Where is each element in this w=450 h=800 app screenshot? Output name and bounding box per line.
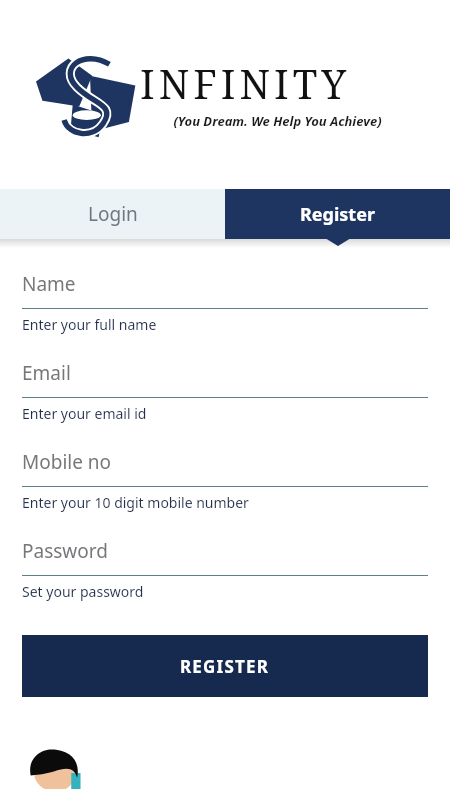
staticText: Enter your email id	[22, 404, 147, 423]
button[interactable]: Name	[0, 271, 450, 334]
staticText: Register	[300, 202, 375, 227]
button[interactable]: Login	[0, 189, 225, 239]
staticText: Email	[22, 360, 71, 386]
button[interactable]: Mobile no	[0, 449, 450, 512]
staticText: REGISTER	[180, 655, 270, 678]
staticText: Enter your full name	[22, 315, 157, 334]
staticText: Enter your 10 digit mobile number	[22, 493, 249, 512]
button[interactable]: REGISTER	[22, 635, 428, 697]
staticText: Login	[88, 201, 138, 227]
staticText: Mobile no	[22, 449, 112, 475]
button[interactable]: Register	[225, 189, 450, 239]
staticText: INFINITY	[140, 56, 351, 110]
staticText: (You Dream. We Help You Achieve)	[140, 112, 415, 130]
button[interactable]: Email	[0, 360, 450, 423]
button[interactable]: Password	[0, 538, 450, 601]
staticText: Name	[22, 271, 76, 297]
staticText: Password	[22, 538, 108, 564]
staticText: Set your password	[22, 582, 144, 601]
